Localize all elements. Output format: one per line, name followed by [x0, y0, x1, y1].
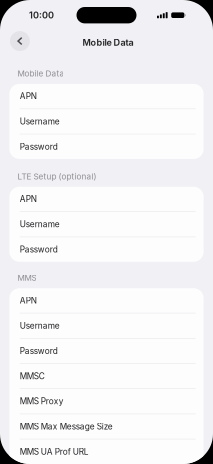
staticText: Mobile Data [17, 69, 64, 78]
staticText: Password [20, 346, 58, 356]
staticText: APN [20, 91, 37, 101]
button[interactable]: APN [9, 288, 204, 313]
button[interactable]: Back [8, 29, 32, 53]
button[interactable]: APN [9, 84, 204, 108]
button[interactable]: MMS UA Prof URL [9, 439, 204, 464]
staticText: APN [20, 194, 37, 204]
staticText: Mobile Data [82, 37, 133, 48]
button[interactable]: APN [9, 187, 204, 211]
button[interactable]: Password [9, 134, 204, 159]
staticText: MMS [17, 273, 36, 283]
staticText: LTE Setup (optional) [17, 171, 96, 181]
staticText: Password [20, 142, 58, 152]
button[interactable]: MMSC [9, 364, 204, 388]
staticText: MMSC [20, 371, 45, 381]
button[interactable]: Username [9, 313, 204, 338]
button[interactable]: MMS Max Message Size [9, 414, 204, 439]
staticText: MMS Proxy [20, 396, 64, 406]
staticText: Password [20, 244, 58, 254]
button[interactable]: Password [9, 339, 204, 363]
staticText: MMS UA Prof URL [20, 447, 89, 457]
staticText: Username [20, 116, 60, 126]
staticText: 10:00 [29, 10, 54, 21]
staticText: Username [20, 321, 60, 331]
staticText: APN [20, 295, 37, 305]
button[interactable]: Username [9, 212, 204, 237]
staticText: Username [20, 219, 60, 229]
staticText: MMS Max Message Size [20, 421, 113, 431]
button[interactable]: MMS Proxy [9, 389, 204, 414]
button[interactable]: Username [9, 109, 204, 134]
button[interactable]: Password [9, 237, 204, 262]
